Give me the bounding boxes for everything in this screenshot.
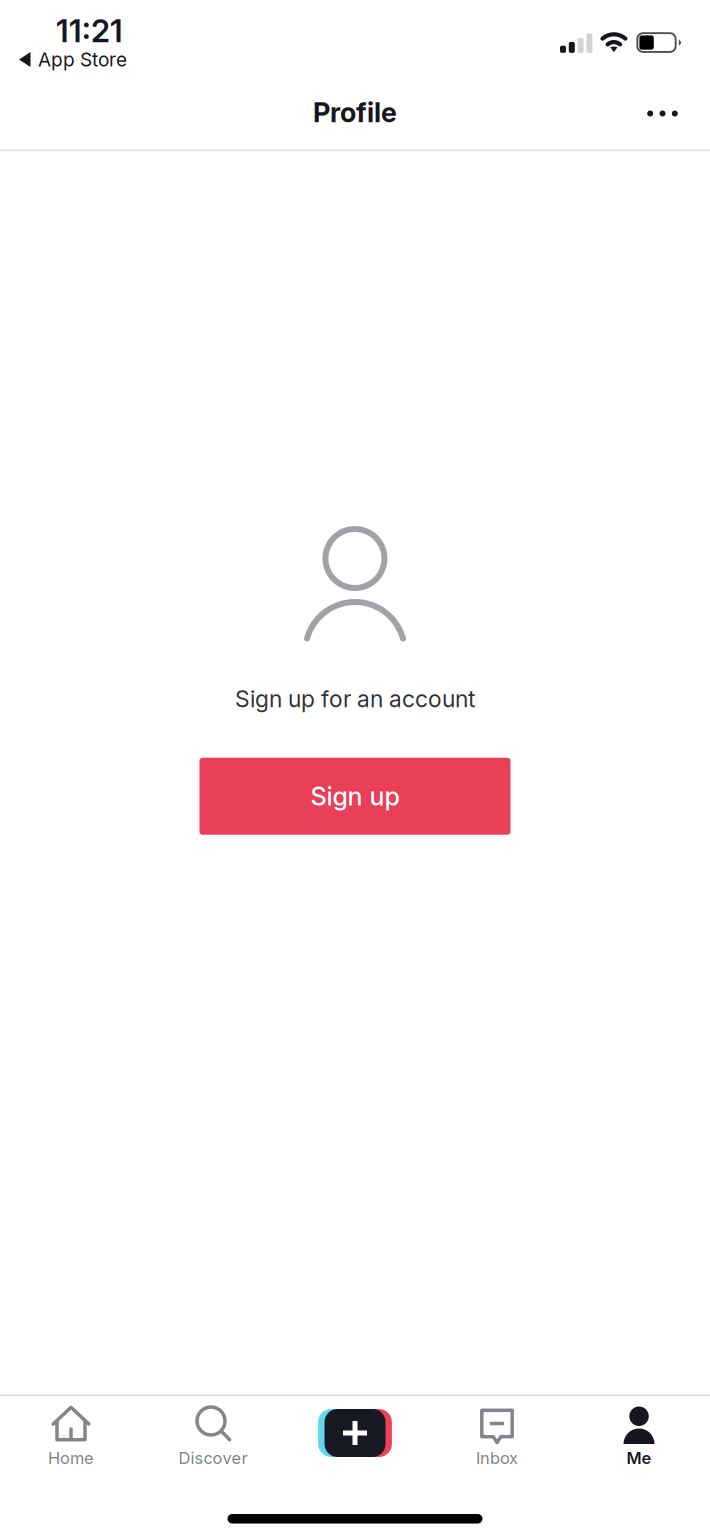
staticText: 11:21 <box>56 12 123 50</box>
button[interactable]: Inbox <box>426 1396 568 1473</box>
button[interactable]: Create <box>284 1396 426 1473</box>
button[interactable]: Home <box>0 1396 142 1473</box>
staticText: Me <box>626 1448 651 1468</box>
staticText: App Store <box>38 48 127 71</box>
staticText: Sign up <box>310 781 399 812</box>
button[interactable]: More options <box>629 83 695 143</box>
staticText: Discover <box>178 1448 247 1468</box>
button[interactable]: App Store <box>19 48 127 71</box>
button[interactable]: Sign up <box>199 758 510 835</box>
staticText: Inbox <box>476 1448 518 1468</box>
staticText: Home <box>48 1448 94 1468</box>
button[interactable]: Discover <box>142 1396 284 1473</box>
staticText: Sign up for an account <box>235 685 475 713</box>
button[interactable]: Me <box>568 1396 710 1473</box>
staticText: Profile <box>313 96 397 129</box>
